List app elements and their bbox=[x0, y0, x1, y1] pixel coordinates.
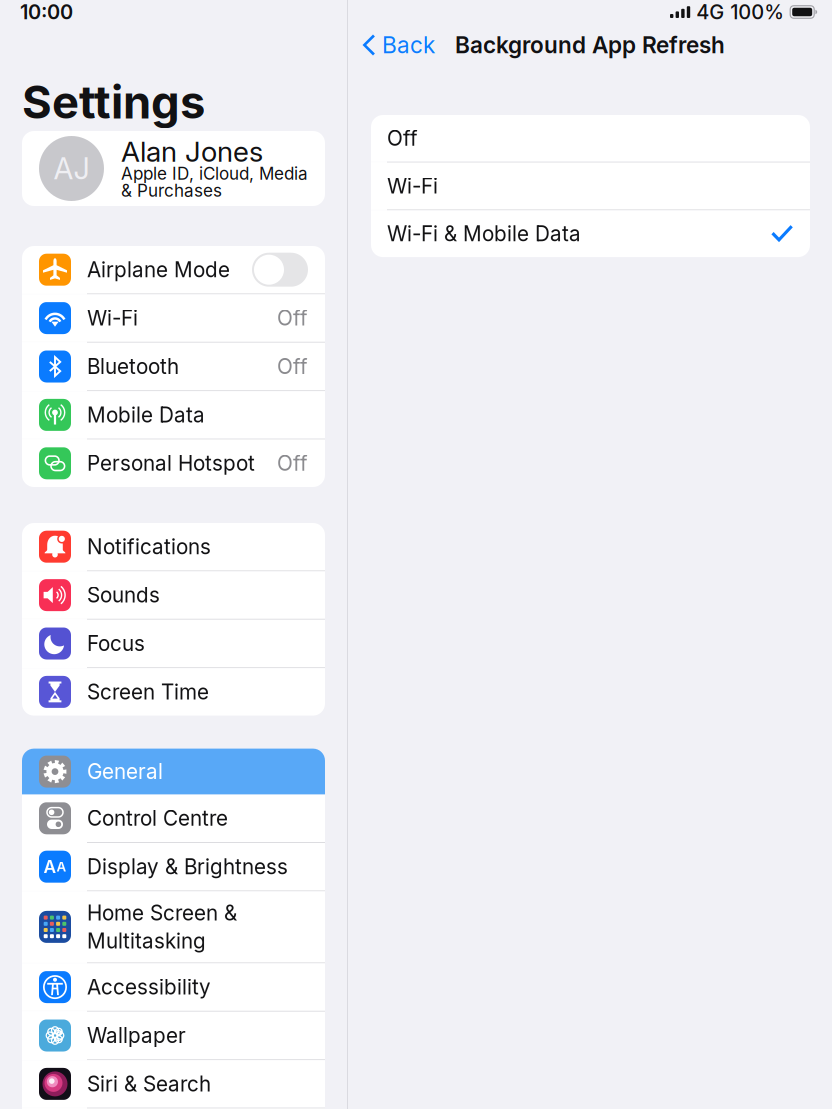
button[interactable]: Home Screen & bbox=[22, 891, 325, 962]
staticText: 10:00 bbox=[20, 0, 73, 24]
staticText: Sounds bbox=[87, 583, 160, 608]
staticText: Off bbox=[387, 126, 418, 151]
button[interactable]: Accessibility bbox=[22, 963, 325, 1011]
staticText: Settings bbox=[22, 75, 205, 129]
button[interactable]: AJ bbox=[22, 131, 325, 206]
staticText: Alan Jones bbox=[121, 135, 263, 168]
staticText: Screen Time bbox=[87, 679, 209, 704]
staticText: 4G bbox=[696, 0, 724, 24]
staticText: A bbox=[43, 856, 56, 877]
staticText: Airplane Mode bbox=[87, 257, 230, 282]
button[interactable]: Personal Hotspot bbox=[22, 440, 325, 487]
staticText: Focus bbox=[87, 631, 145, 656]
staticText: & Purchases bbox=[121, 180, 222, 201]
button[interactable]: Screen Time bbox=[22, 668, 325, 716]
button[interactable]: A bbox=[22, 843, 325, 890]
staticText: Siri & Search bbox=[87, 1071, 211, 1096]
staticText: Wi-Fi bbox=[387, 173, 438, 198]
staticText: Off bbox=[277, 354, 308, 379]
staticText: Off bbox=[277, 451, 308, 476]
staticText: Back bbox=[382, 31, 435, 59]
button[interactable]: Airplane Mode bbox=[22, 246, 325, 293]
staticText: Bluetooth bbox=[87, 354, 179, 379]
staticText: Home Screen & bbox=[87, 900, 237, 925]
button[interactable]: Wi-Fi bbox=[371, 163, 810, 209]
staticText: Wi-Fi bbox=[87, 306, 138, 331]
staticText: Wi-Fi & Mobile Data bbox=[387, 221, 581, 246]
button[interactable]: Bluetooth bbox=[22, 343, 325, 390]
button[interactable]: General bbox=[22, 749, 325, 795]
staticText: Notifications bbox=[87, 534, 211, 559]
staticText: A bbox=[56, 859, 66, 875]
button[interactable]: Wi-Fi bbox=[22, 294, 325, 342]
staticText: Apple ID, iCloud, Media bbox=[121, 163, 308, 184]
staticText: Background App Refresh bbox=[455, 31, 725, 59]
button[interactable]: Wallpaper bbox=[22, 1012, 325, 1059]
button[interactable]: Wi-Fi & Mobile Data bbox=[371, 210, 810, 257]
staticText: Control Centre bbox=[87, 806, 228, 831]
staticText: Accessibility bbox=[87, 975, 211, 1000]
staticText: AJ bbox=[53, 151, 89, 186]
button[interactable]: Siri & Search bbox=[22, 1060, 325, 1108]
staticText: Multitasking bbox=[87, 928, 206, 953]
staticText: Display & Brightness bbox=[87, 854, 288, 879]
button[interactable]: Notifications bbox=[22, 523, 325, 570]
staticText: Off bbox=[277, 306, 308, 331]
button[interactable]: Control Centre bbox=[22, 795, 325, 842]
staticText: 100% bbox=[730, 0, 784, 24]
button[interactable]: Back bbox=[348, 25, 447, 65]
button[interactable]: Off bbox=[371, 115, 810, 162]
staticText: General bbox=[87, 759, 163, 784]
button[interactable]: Focus bbox=[22, 620, 325, 667]
button[interactable]: Mobile Data bbox=[22, 391, 325, 439]
staticText: Personal Hotspot bbox=[87, 451, 255, 476]
staticText: Mobile Data bbox=[87, 402, 205, 427]
button[interactable]: Sounds bbox=[22, 571, 325, 619]
staticText: Wallpaper bbox=[87, 1023, 186, 1048]
